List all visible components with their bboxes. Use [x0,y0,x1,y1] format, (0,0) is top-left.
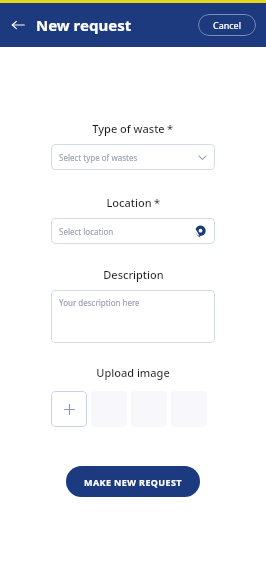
button[interactable]: Add image [51,391,87,427]
staticText: Select type of wastes [59,152,138,163]
button[interactable]: Cancel [198,14,256,36]
staticText: Type of waste [92,121,165,136]
staticText: Select location [59,226,114,237]
staticText: New request [36,15,132,35]
button[interactable]: Your description here [51,290,215,343]
staticText: Cancel [213,19,242,31]
staticText: Location [106,195,152,210]
staticText: Upload image [96,365,170,380]
button[interactable]: Pick location [191,222,209,240]
button[interactable]: Back [8,15,28,35]
staticText: Your description here [59,297,140,308]
button[interactable]: MAKE NEW REQUEST [66,466,200,497]
staticText: * [167,121,174,136]
button[interactable]: Select type of wastes [51,144,215,170]
button[interactable]: Select location [51,218,215,244]
staticText: * [154,195,161,210]
staticText: Description [103,267,164,282]
staticText: MAKE NEW REQUEST [84,476,182,488]
